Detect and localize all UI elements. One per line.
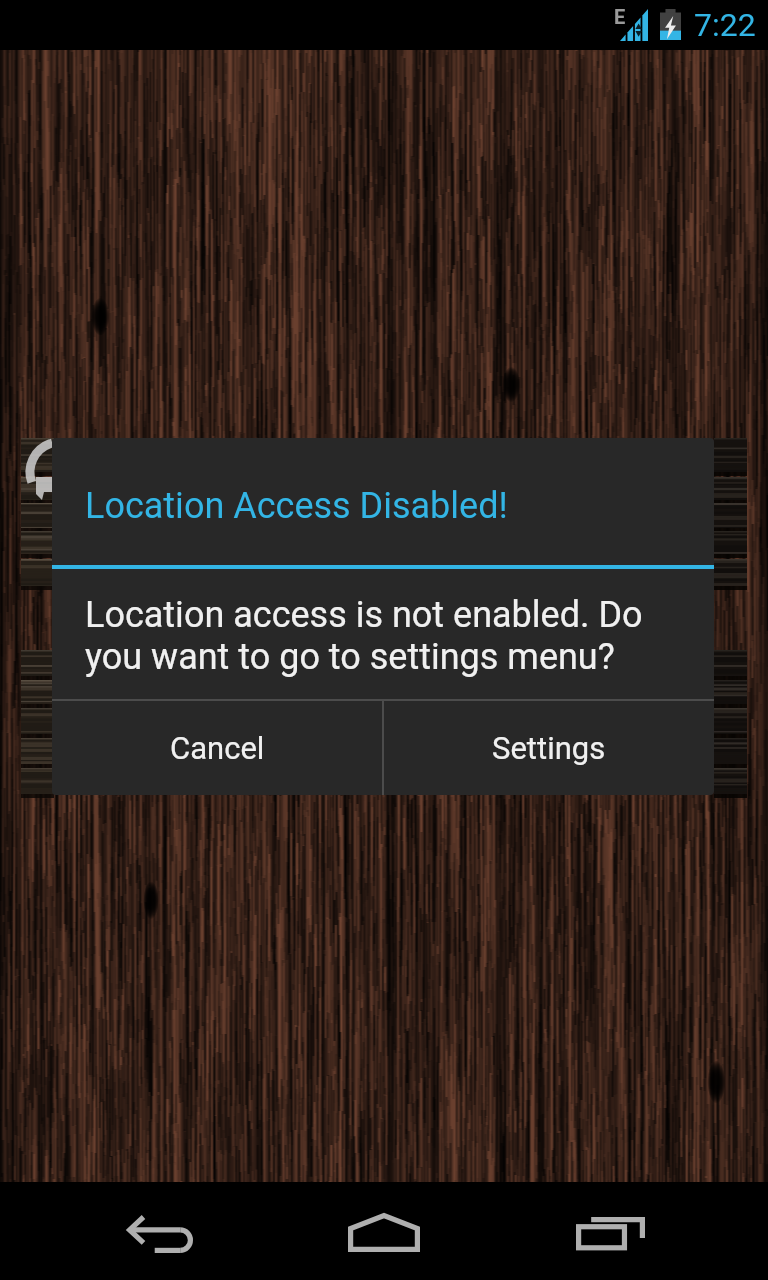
- staticText: Location access is not enabled. Do you w…: [85, 594, 700, 678]
- staticText: Settings: [492, 730, 606, 766]
- button[interactable]: Cancel: [52, 701, 382, 795]
- button[interactable]: Back: [60, 1182, 260, 1280]
- button[interactable]: Recent apps: [510, 1182, 710, 1280]
- button[interactable]: Home: [284, 1182, 484, 1280]
- staticText: Location Access Disabled!: [85, 485, 508, 527]
- staticText: E: [614, 5, 626, 28]
- staticText: 7:22: [694, 6, 756, 44]
- button[interactable]: Settings: [384, 701, 714, 795]
- staticText: Cancel: [170, 730, 265, 766]
